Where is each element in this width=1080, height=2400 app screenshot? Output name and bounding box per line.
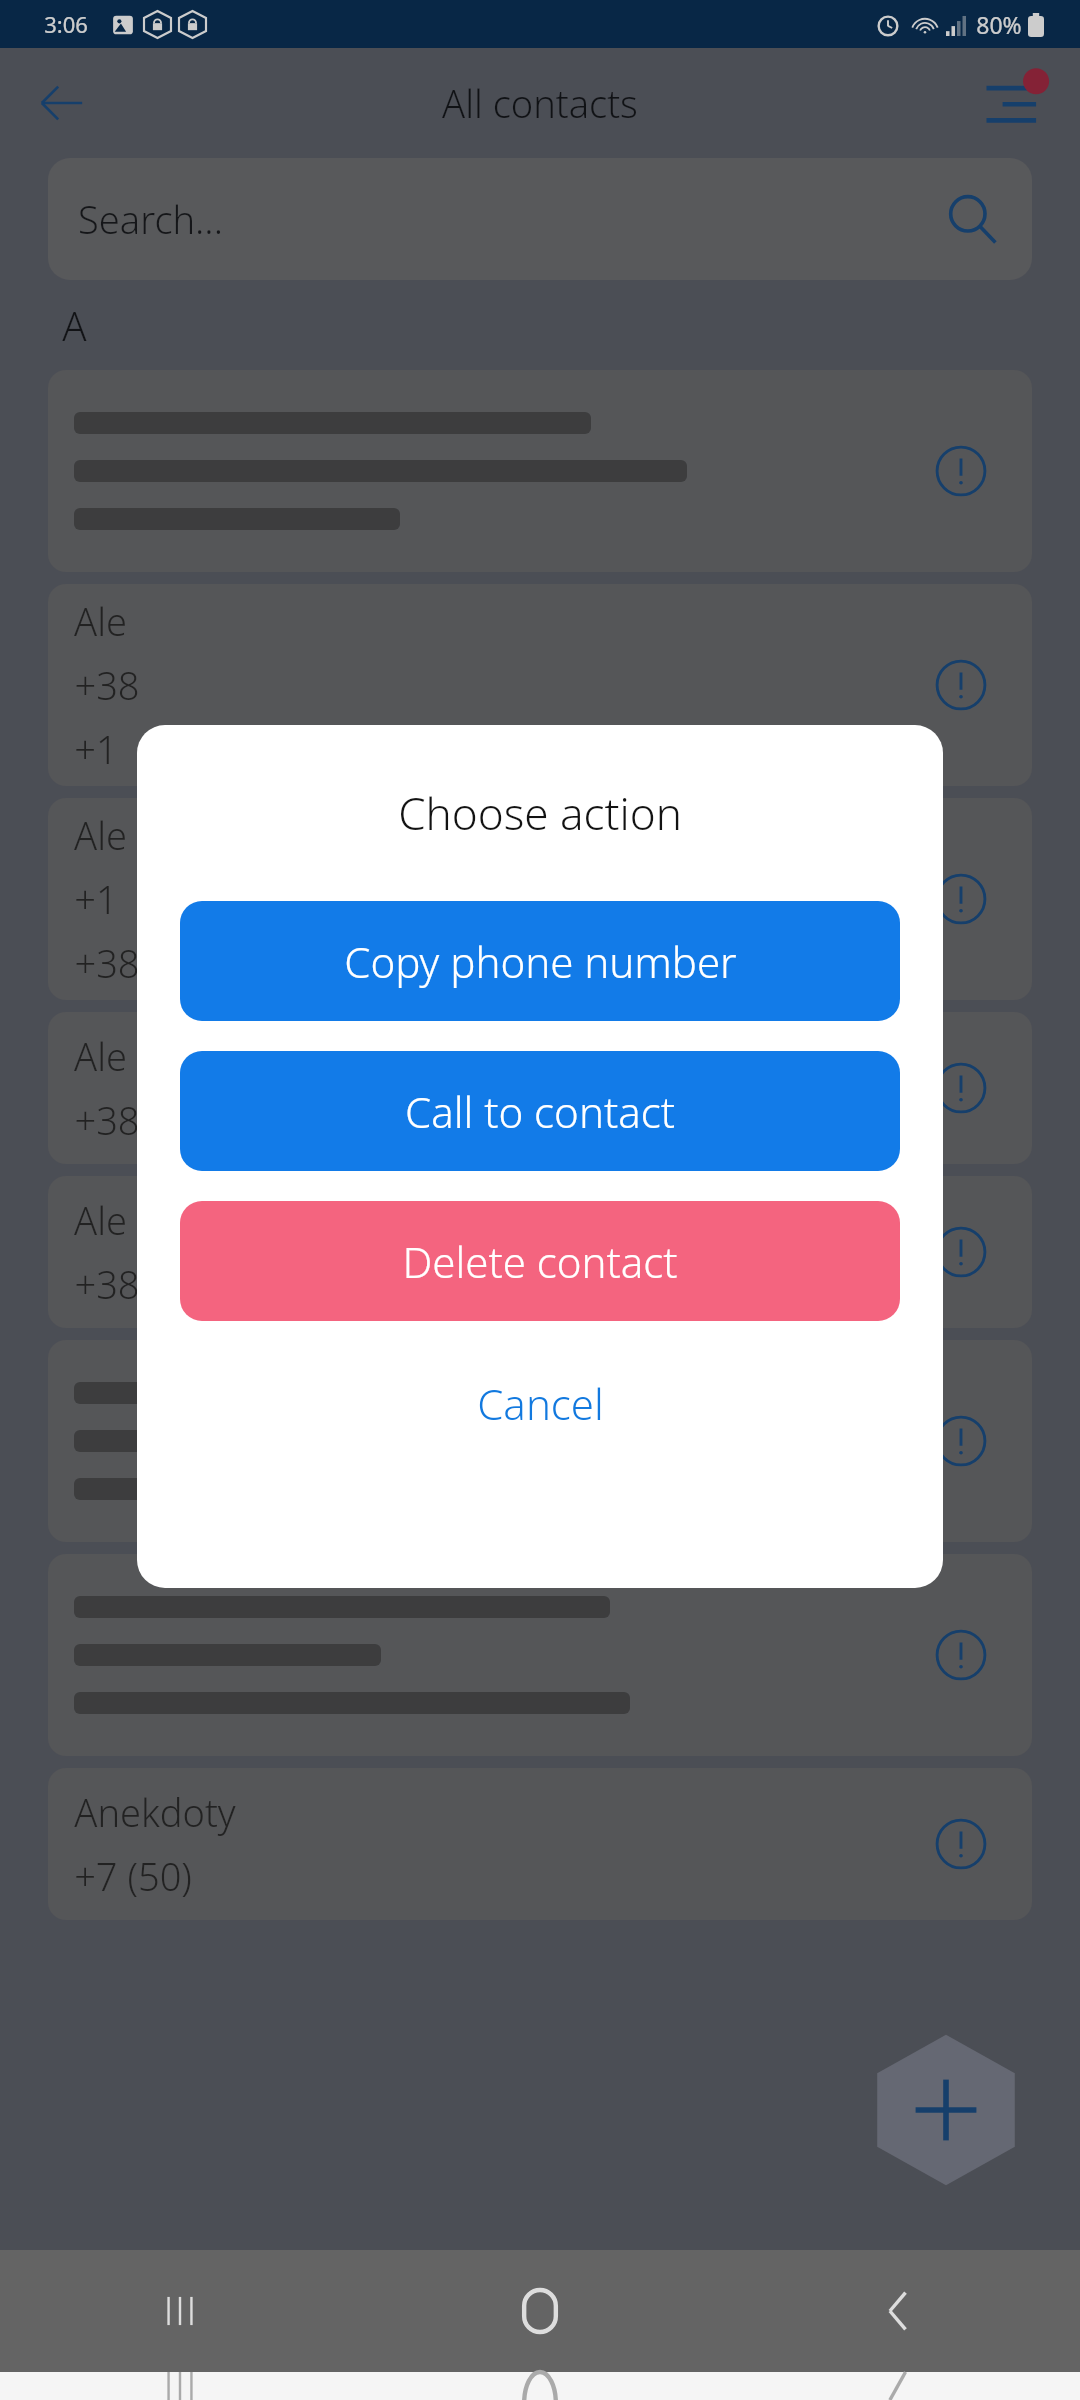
button[interactable]: Home [360,2250,720,2372]
button[interactable]: Ale [48,798,1032,1000]
button[interactable]: Contact info [930,1410,992,1472]
button[interactable]: Cancel [137,1347,943,1459]
staticText: Ale [74,809,127,861]
button[interactable]: Copy phone number [180,901,900,1021]
button[interactable]: Contact info [48,1340,1032,1542]
staticText: Ale [74,1030,127,1082]
staticText: +1 [74,723,118,775]
staticText: Ale [74,1194,127,1246]
staticText: Call to contact [405,1083,675,1140]
button[interactable]: Recents [0,2250,360,2372]
staticText: Search... [78,193,223,245]
button[interactable]: Contact info [930,654,992,716]
button[interactable]: Contact info [930,1221,992,1283]
staticText: A [62,298,87,352]
button[interactable]: Add contact [866,2030,1026,2190]
staticText: +38 [74,937,140,989]
staticText: Ale [74,595,127,647]
staticText: +7 (50) [74,1850,192,1902]
button[interactable]: Contact info [48,1554,1032,1756]
button[interactable]: Contact info [930,440,992,502]
staticText: Cancel [477,1375,604,1432]
staticText: Copy phone number [344,933,737,990]
button[interactable]: Back [720,2250,1080,2372]
staticText: +1 [74,873,118,925]
button[interactable]: Contact info [48,370,1032,572]
staticText: +38 [74,1094,140,1146]
staticText: Choose action [398,783,682,843]
staticText: +38 [74,1258,140,1310]
button[interactable]: Anekdoty [48,1768,1032,1920]
button[interactable]: Filter menu [972,60,1058,146]
staticText: Anekdoty [74,1786,236,1838]
button[interactable]: Ale [48,1012,1032,1164]
button[interactable]: Ale [48,1176,1032,1328]
staticText: Delete contact [402,1233,678,1290]
staticText: +38 [74,659,140,711]
staticText: 3:06 [44,9,88,39]
button[interactable]: Contact info [930,1057,992,1119]
button[interactable]: Delete contact [180,1201,900,1321]
staticText: All contacts [442,77,638,129]
button[interactable]: Contact info [930,868,992,930]
button[interactable]: Call to contact [180,1051,900,1171]
button[interactable]: Contact info [930,1813,992,1875]
button[interactable]: Search... [48,158,1032,280]
button[interactable]: Contact info [930,1624,992,1686]
button[interactable]: Ale [48,584,1032,786]
staticText: 80% [976,9,1022,40]
button[interactable]: Back [22,63,102,143]
